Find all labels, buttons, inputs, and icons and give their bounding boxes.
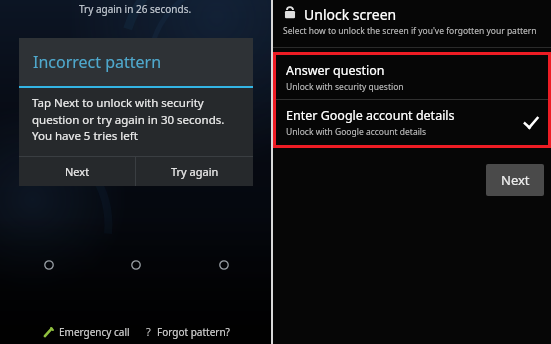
staticText: Next [501, 171, 530, 189]
button[interactable]: Emergency call [40, 322, 132, 342]
staticText: Emergency call [59, 325, 130, 339]
staticText: Answer question [286, 62, 385, 79]
staticText: ? [146, 324, 151, 339]
staticText: Unlock with security question [286, 81, 404, 93]
staticText: Tap Next to unlock with security questio… [32, 95, 243, 143]
staticText: Try again in 26 seconds. [79, 2, 192, 16]
staticText: Select how to unlock the screen if you'v… [283, 25, 537, 37]
staticText: Enter Google account details [286, 107, 455, 124]
staticText: Incorrect pattern [33, 51, 162, 73]
button[interactable]: Try again [136, 157, 253, 186]
staticText: Unlock screen [304, 5, 397, 24]
button[interactable]: Answer question [276, 55, 548, 99]
staticText: Try again [171, 164, 219, 179]
staticText: Next [65, 164, 90, 179]
button[interactable]: Next [486, 164, 544, 196]
button[interactable]: ? [144, 321, 232, 342]
button[interactable]: Enter Google account details [276, 100, 548, 145]
button[interactable]: Next [19, 157, 135, 186]
staticText: Unlock with Google account details [286, 126, 427, 138]
staticText: Forgot pattern? [157, 325, 230, 339]
